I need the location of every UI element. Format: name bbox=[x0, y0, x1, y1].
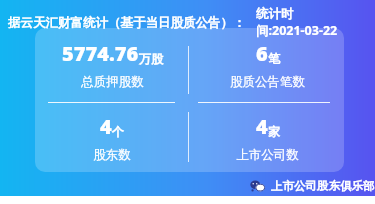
staticText: 6 bbox=[256, 40, 268, 67]
button[interactable]: 6 bbox=[230, 40, 305, 90]
staticText: 4 bbox=[100, 113, 112, 140]
staticText: 上市公司股东俱乐部 bbox=[271, 179, 375, 193]
other: WeChat bbox=[250, 178, 266, 194]
staticText: 上市公司数 bbox=[236, 147, 299, 163]
staticText: 万股 bbox=[139, 51, 163, 66]
staticText: 总质押股数 bbox=[81, 74, 144, 90]
staticText: 家 bbox=[268, 124, 280, 139]
staticText: 股质公告笔数 bbox=[230, 74, 305, 90]
staticText: 股东数 bbox=[93, 147, 131, 163]
staticText: 据云天汇财富统计（基于当日股质公告）： bbox=[8, 15, 246, 31]
staticText: 笔 bbox=[268, 51, 280, 66]
staticText: 统计时间:2021-03-22 bbox=[256, 6, 365, 39]
button[interactable]: 5774.76 bbox=[62, 40, 163, 90]
staticText: 4 bbox=[256, 113, 268, 140]
staticText: 5774.76 bbox=[62, 40, 139, 67]
button[interactable]: 4 bbox=[236, 113, 299, 163]
button[interactable]: 5774.76 bbox=[35, 28, 344, 172]
staticText: 个 bbox=[112, 124, 124, 139]
button[interactable]: WeChat bbox=[250, 178, 375, 194]
button[interactable]: 4 bbox=[93, 113, 131, 163]
